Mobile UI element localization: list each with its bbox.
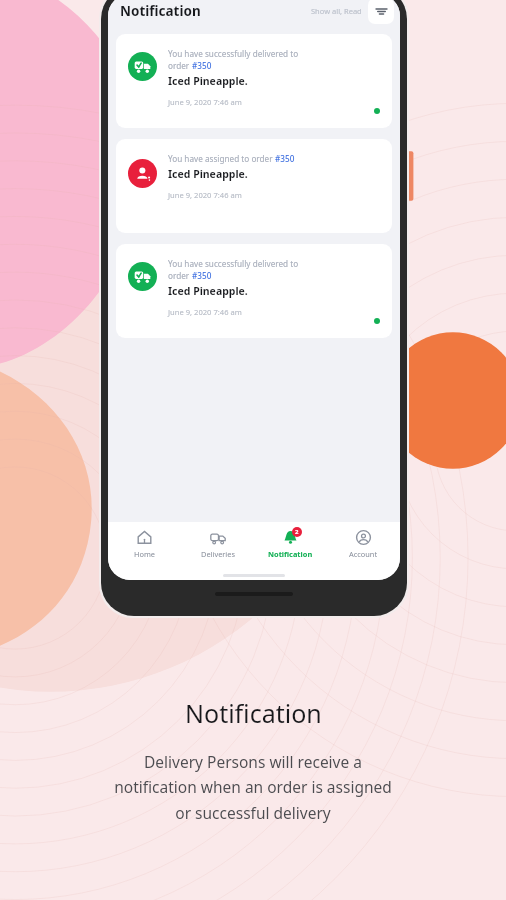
staticText: Delivery Persons will receive a notifica… [114,751,392,824]
staticText: You have successfully delivered to [168,258,299,269]
staticText: #350 [275,153,295,164]
staticText: 2 [295,528,299,536]
staticText: Deliveries [201,549,235,559]
staticText: You have successfully delivered to [168,48,299,59]
staticText: order [168,270,192,281]
staticText: Iced Pineapple. [168,74,248,88]
button[interactable]: You have successfully delivered to [116,244,392,338]
button[interactable]: Show all, Read [309,2,364,20]
staticText: Account [349,549,378,559]
staticText: Home [134,549,156,559]
staticText: June 9, 2020 7:46 am [168,307,242,317]
button[interactable]: 2 [254,522,327,570]
button[interactable]: You have successfully delivered to [116,34,392,128]
button[interactable]: Account [327,522,400,570]
button[interactable]: You have assigned to order [116,139,392,233]
staticText: order [168,60,192,71]
button[interactable]: Deliveries [181,522,254,570]
staticText: June 9, 2020 7:46 am [168,97,242,107]
staticText: #350 [192,270,212,281]
staticText: Iced Pineapple. [168,167,248,181]
staticText: Notification [268,549,313,559]
button[interactable]: Home [108,522,181,570]
staticText: Iced Pineapple. [168,284,248,298]
staticText: Notification [120,2,201,20]
staticText: Notification [185,696,322,730]
staticText: You have assigned to order [168,153,275,164]
staticText: #350 [192,60,212,71]
button[interactable]: Filter [368,0,394,24]
staticText: June 9, 2020 7:46 am [168,190,242,200]
